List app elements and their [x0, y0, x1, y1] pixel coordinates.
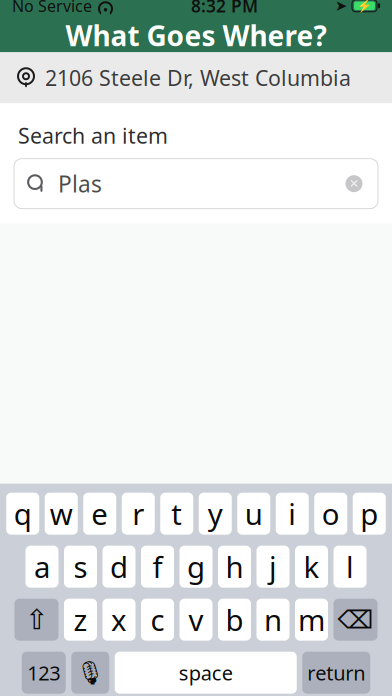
- staticText: ➤: [335, 0, 347, 14]
- staticText: space: [179, 659, 233, 686]
- button[interactable]: v: [179, 599, 212, 641]
- staticText: a: [34, 547, 50, 586]
- staticText: f: [152, 547, 162, 586]
- button[interactable]: y: [199, 493, 232, 535]
- staticText: 🎙: [76, 660, 105, 686]
- staticText: s: [73, 547, 87, 586]
- button[interactable]: n: [256, 599, 289, 641]
- button[interactable]: p: [353, 493, 386, 535]
- button[interactable]: k: [295, 546, 328, 588]
- button[interactable]: z: [64, 599, 97, 641]
- staticText: d: [110, 547, 128, 586]
- staticText: z: [73, 600, 87, 639]
- staticText: 123: [27, 659, 60, 686]
- staticText: t: [171, 494, 182, 533]
- staticText: What Goes Where?: [65, 17, 326, 54]
- staticText: return: [307, 659, 365, 686]
- button[interactable]: q: [6, 493, 39, 535]
- staticText: Plas: [58, 169, 102, 199]
- button[interactable]: r: [122, 493, 155, 535]
- button[interactable]: u: [237, 493, 270, 535]
- button[interactable]: o: [314, 493, 347, 535]
- button[interactable]: e: [83, 493, 116, 535]
- staticText: q: [14, 494, 32, 533]
- button[interactable]: 123: [22, 652, 66, 694]
- staticText: v: [188, 600, 203, 639]
- button[interactable]: Plas: [14, 159, 378, 209]
- button[interactable]: d: [102, 546, 135, 588]
- staticText: ⌫: [337, 605, 373, 634]
- staticText: o: [322, 494, 340, 533]
- staticText: y: [208, 494, 223, 533]
- staticText: u: [245, 494, 263, 533]
- staticText: j: [269, 547, 277, 586]
- button[interactable]: f: [141, 546, 174, 588]
- button[interactable]: j: [256, 546, 289, 588]
- button[interactable]: return: [302, 652, 370, 694]
- staticText: r: [132, 494, 144, 533]
- staticText: n: [264, 600, 282, 639]
- staticText: No Service: [12, 0, 92, 16]
- button[interactable]: h: [218, 546, 251, 588]
- staticText: Search an item: [18, 121, 168, 150]
- button[interactable]: i: [276, 493, 309, 535]
- button[interactable]: b: [218, 599, 251, 641]
- button[interactable]: l: [333, 546, 366, 588]
- button[interactable]: c: [141, 599, 174, 641]
- staticText: i: [288, 494, 296, 533]
- staticText: k: [303, 547, 319, 586]
- staticText: x: [111, 600, 127, 639]
- staticText: c: [150, 600, 164, 639]
- staticText: p: [360, 494, 378, 533]
- button[interactable]: t: [160, 493, 193, 535]
- staticText: g: [187, 547, 205, 586]
- button[interactable]: Shift: [14, 599, 58, 641]
- button[interactable]: Delete: [333, 599, 377, 641]
- staticText: b: [225, 600, 243, 639]
- staticText: h: [225, 547, 243, 586]
- staticText: 8:32 PM: [191, 0, 258, 17]
- staticText: m: [298, 600, 325, 639]
- button[interactable]: w: [45, 493, 78, 535]
- staticText: ⇧: [25, 604, 48, 636]
- button[interactable]: space: [115, 652, 297, 694]
- staticText: 2106 Steele Dr, West Columbia: [45, 64, 351, 92]
- button[interactable]: s: [64, 546, 97, 588]
- staticText: ✕: [349, 177, 359, 190]
- staticText: l: [346, 547, 354, 586]
- button[interactable]: Dictation: [71, 652, 109, 694]
- staticText: e: [91, 494, 108, 533]
- button[interactable]: g: [179, 546, 212, 588]
- button[interactable]: x: [102, 599, 135, 641]
- button[interactable]: a: [25, 546, 58, 588]
- staticText: ⚡: [357, 0, 372, 13]
- button[interactable]: m: [295, 599, 328, 641]
- staticText: w: [50, 494, 73, 533]
- button[interactable]: 2106 Steele Dr, West Columbia: [0, 52, 392, 103]
